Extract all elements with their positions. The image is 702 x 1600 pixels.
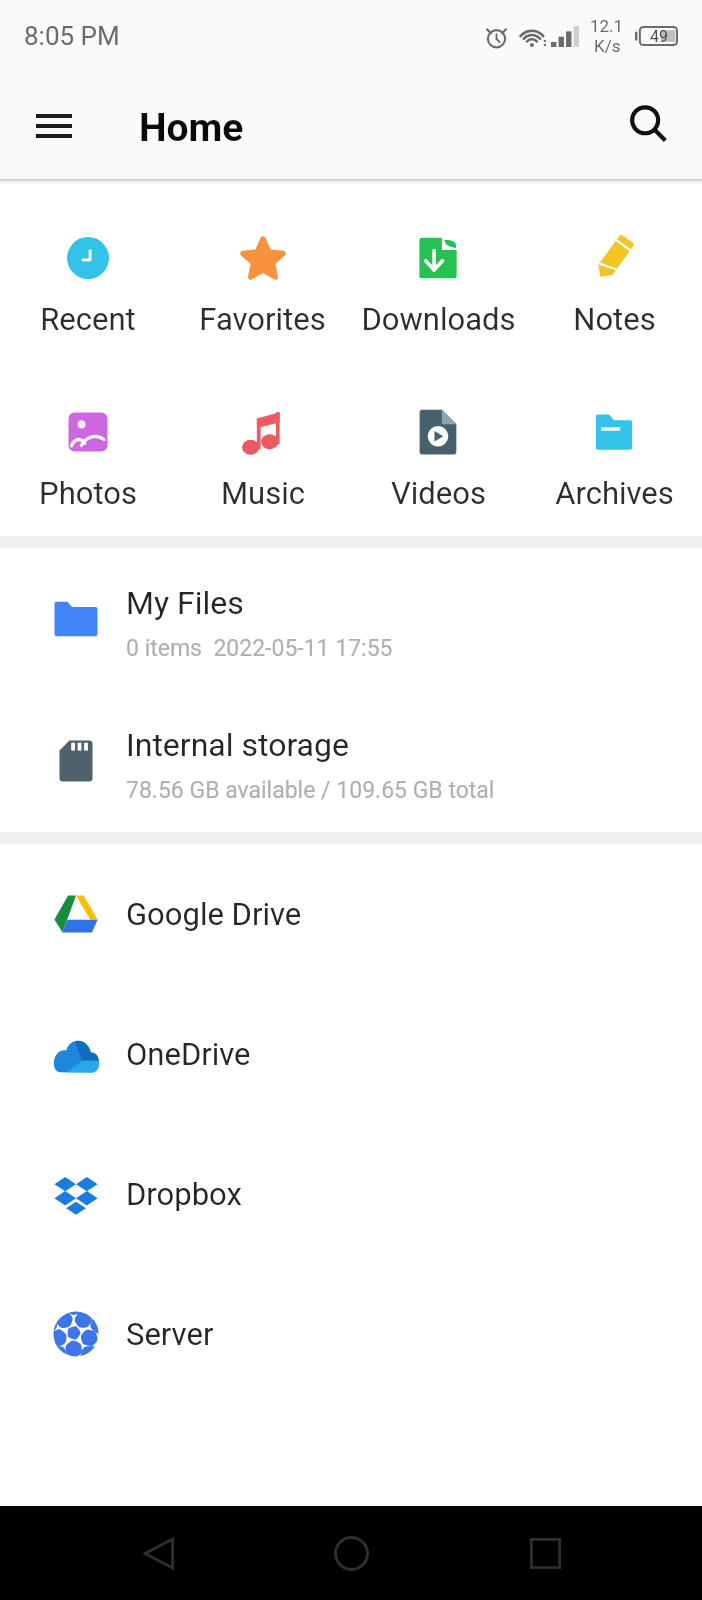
button[interactable]: Internal storage — [0, 690, 702, 832]
staticText: Music — [221, 475, 305, 511]
staticText: Favorites — [199, 301, 326, 337]
button[interactable]: Google Drive — [0, 844, 702, 984]
staticText: Photos — [39, 475, 137, 511]
button[interactable]: Archives — [526, 404, 702, 511]
staticText: My Files — [126, 584, 244, 622]
button[interactable]: Videos — [350, 404, 526, 511]
staticText: 8:05 PM — [24, 21, 120, 51]
button[interactable]: Recent — [0, 230, 175, 337]
staticText: Notes — [573, 301, 656, 337]
button[interactable]: Back — [122, 1517, 194, 1589]
staticText: Dropbox — [126, 1176, 242, 1212]
staticText: 78.56 GB available / 109.65 GB total — [126, 777, 495, 804]
button[interactable]: Search — [614, 90, 686, 162]
button[interactable]: Photos — [0, 404, 175, 511]
button[interactable]: Notes — [526, 230, 702, 337]
button[interactable]: Navigation menu — [18, 90, 90, 162]
staticText: Recent — [40, 301, 136, 337]
staticText: Home — [139, 105, 244, 151]
button[interactable]: OneDrive — [0, 984, 702, 1124]
button[interactable]: Home — [315, 1517, 387, 1589]
staticText: OneDrive — [126, 1036, 251, 1072]
button[interactable]: Recent apps — [509, 1517, 581, 1589]
button[interactable]: Music — [175, 404, 350, 511]
staticText: 0 items 2022-05-11 17:55 — [126, 635, 393, 662]
staticText: Internal storage — [126, 726, 349, 764]
staticText: Videos — [391, 475, 486, 511]
staticText: Google Drive — [126, 896, 302, 932]
button[interactable]: Favorites — [175, 230, 350, 337]
staticText: K/s — [594, 36, 621, 56]
button[interactable]: Dropbox — [0, 1124, 702, 1264]
staticText: Archives — [555, 475, 674, 511]
button[interactable]: Server — [0, 1264, 702, 1404]
staticText: 12.1 — [590, 16, 624, 36]
button[interactable]: Downloads — [350, 230, 526, 337]
staticText: 49 — [650, 27, 668, 46]
button[interactable]: My Files — [0, 548, 702, 690]
staticText: Downloads — [361, 301, 516, 337]
staticText: Server — [126, 1316, 214, 1352]
